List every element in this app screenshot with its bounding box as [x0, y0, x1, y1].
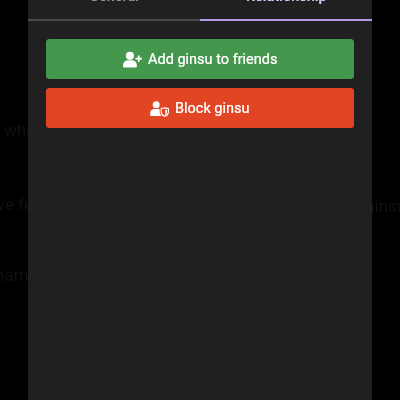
staticText: Block ginsu — [175, 100, 250, 117]
staticText: Add ginsu to friends — [148, 51, 278, 68]
staticText: Relationship — [246, 0, 327, 5]
button[interactable]: Relationship — [200, 0, 372, 21]
staticText: ve fee — [0, 194, 43, 214]
staticText: General — [89, 0, 139, 5]
button[interactable]: Add ginsu to friends — [46, 39, 354, 79]
button[interactable]: General — [28, 0, 200, 21]
staticText: names — [0, 265, 47, 285]
button[interactable]: Block ginsu — [46, 88, 354, 128]
staticText: ginsu — [365, 196, 400, 216]
staticText: when — [4, 120, 45, 140]
